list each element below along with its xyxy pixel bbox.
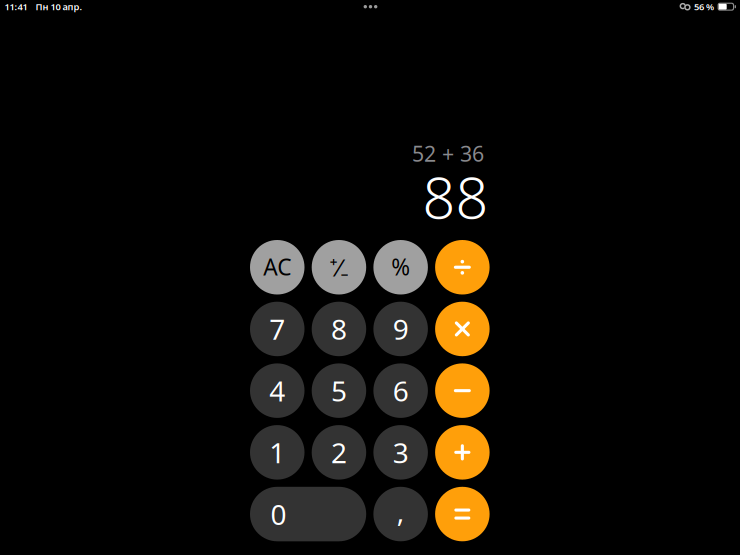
button[interactable]: Multiply [435,302,490,356]
staticText: ⁺⁄₋ [329,251,348,283]
staticText: AC [263,252,291,282]
button[interactable]: Divide [435,240,490,294]
button[interactable]: 5 [312,363,366,418]
staticText: 0 [271,495,287,533]
staticText: 9 [393,310,409,348]
staticText: 8 [331,310,347,348]
staticText: 52 + 36 [412,139,484,168]
staticText: 4 [269,372,285,409]
button[interactable]: AC [250,240,304,294]
button[interactable]: Plus [435,425,490,480]
button[interactable]: 8 [312,302,366,356]
staticText: % [391,252,410,282]
staticText: 1 [269,434,285,471]
button[interactable]: 3 [373,425,428,480]
staticText: 3 [393,434,409,471]
button[interactable]: Minus [435,363,490,418]
staticText: 56 % [694,0,714,13]
staticText: 7 [269,310,285,348]
button[interactable]: 6 [373,363,428,418]
button[interactable]: 1 [250,425,304,480]
staticText: 6 [393,372,409,409]
button[interactable]: 9 [373,302,428,356]
button[interactable]: 2 [312,425,366,480]
staticText: 11:41 Пн 10 апр. [4,0,82,13]
button[interactable]: 4 [250,363,304,418]
button[interactable]: ⁺⁄₋ [312,240,366,294]
button[interactable]: 0 [250,487,366,541]
button[interactable]: % [373,240,428,294]
staticText: , [397,492,405,530]
staticText: 2 [331,434,347,471]
button[interactable]: , [373,487,428,541]
staticText: 5 [331,372,347,409]
button[interactable]: 7 [250,302,304,356]
staticText: 88 [422,158,488,234]
button[interactable]: Equals [435,487,490,541]
